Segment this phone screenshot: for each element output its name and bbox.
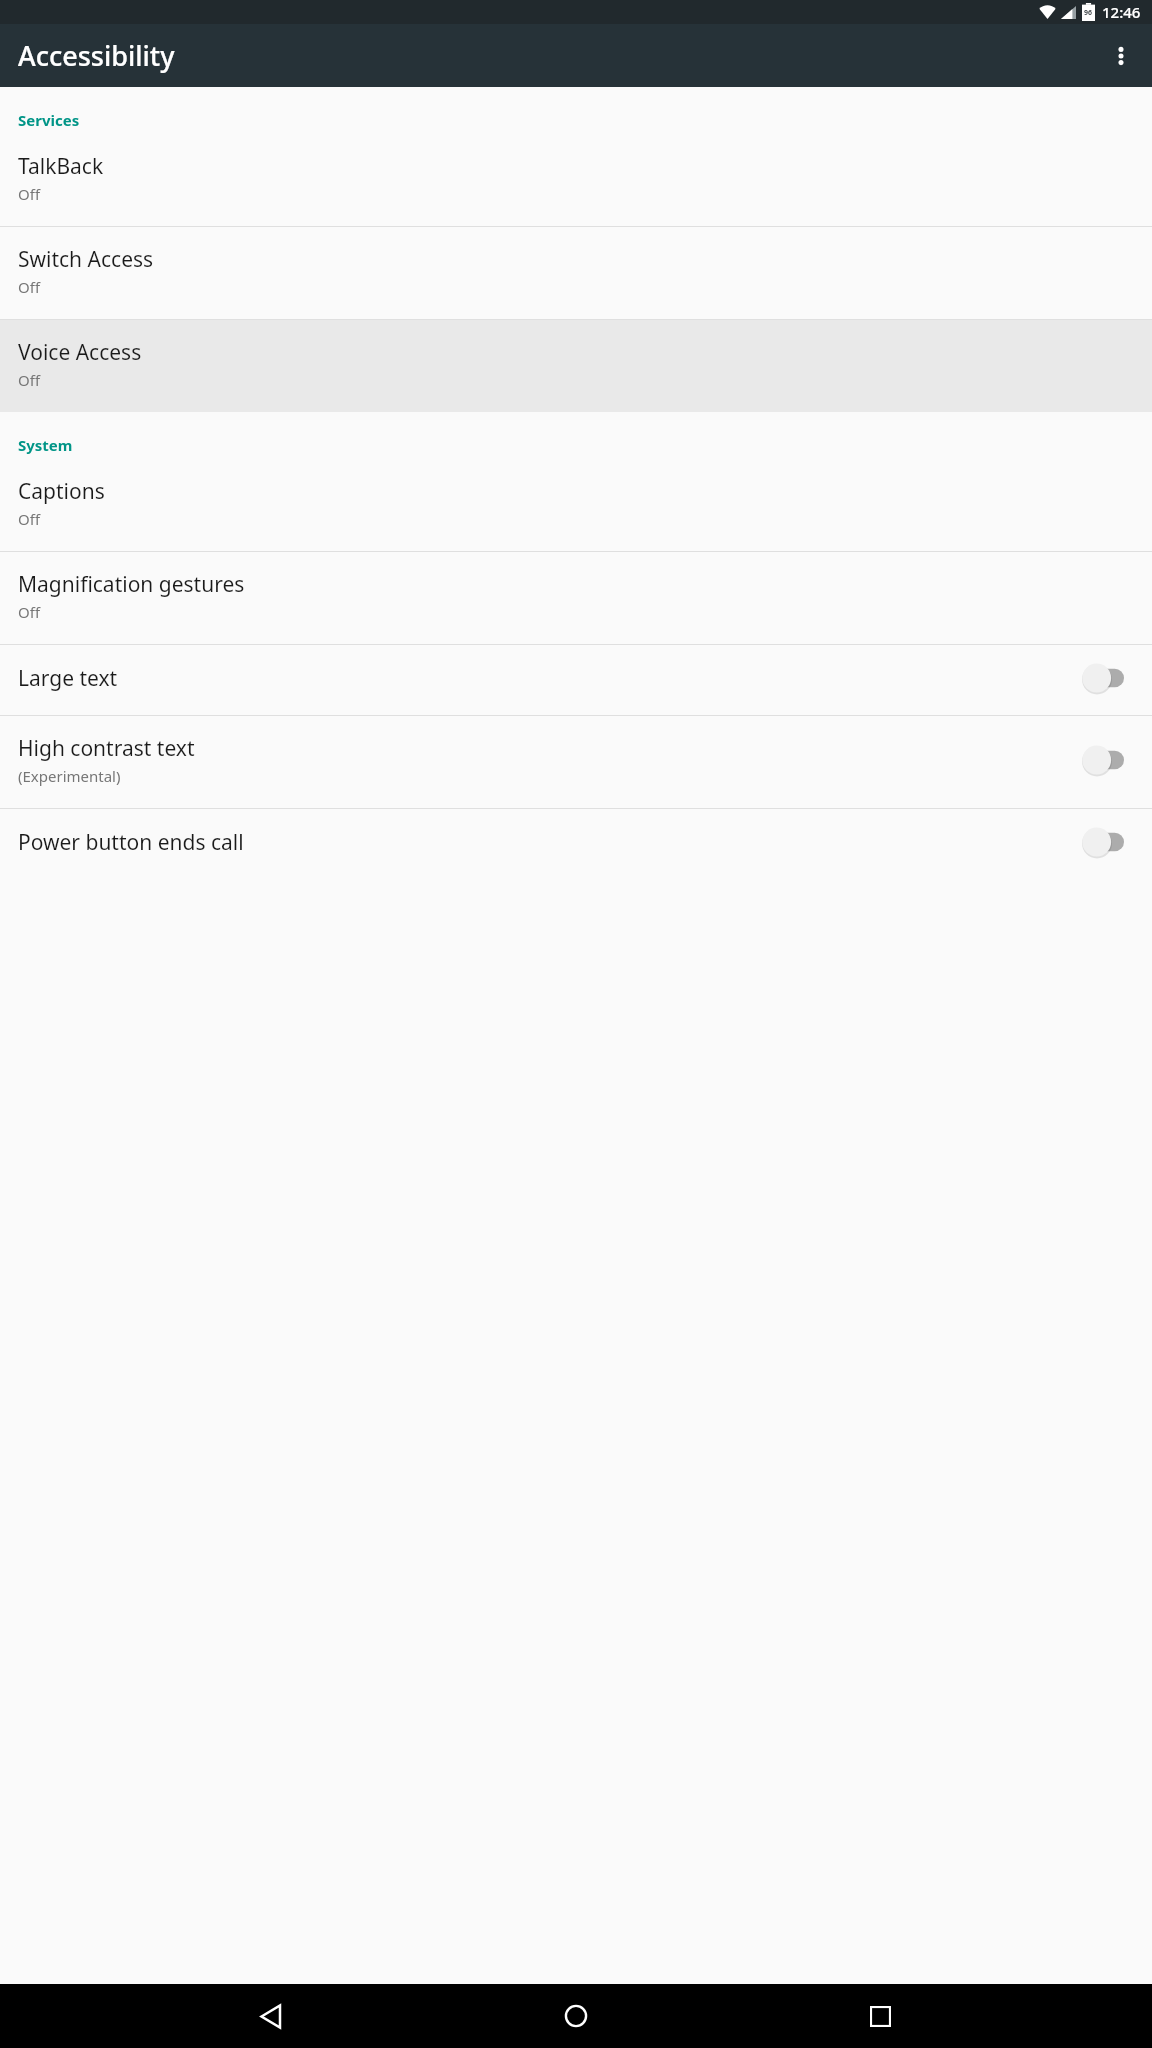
button[interactable]: Magnification gestures [0,552,1152,644]
staticText: Off [18,602,41,622]
button[interactable]: Power button ends call [0,809,1152,879]
staticText: Magnification gestures [18,570,245,599]
button[interactable]: Toggle off [1082,745,1132,775]
button[interactable]: Captions [0,459,1152,551]
staticText: High contrast text [18,734,195,763]
button[interactable]: Switch Access [0,227,1152,319]
staticText: Off [18,370,41,390]
button[interactable]: More options [1097,32,1145,80]
staticText: Off [18,277,41,297]
staticText: Voice Access [18,338,142,367]
staticText: Off [18,184,41,204]
button[interactable]: Back [240,1984,304,2048]
staticText: Off [18,509,41,529]
staticText: 12:46 [1102,2,1141,22]
staticText: Switch Access [18,245,154,274]
staticText: Accessibility [18,37,175,74]
button[interactable]: Toggle off [1082,663,1132,693]
button[interactable]: Voice Access [0,320,1152,412]
button[interactable]: Home [544,1984,608,2048]
staticText: (Experimental) [18,766,121,786]
staticText: TalkBack [18,152,104,181]
button[interactable]: Large text [0,645,1152,715]
button[interactable]: Toggle off [1082,827,1132,857]
button[interactable]: TalkBack [0,134,1152,226]
staticText: Large text [18,664,118,693]
staticText: Power button ends call [18,828,244,857]
button[interactable]: High contrast text [0,716,1152,808]
button[interactable]: Recent apps [848,1984,912,2048]
staticText: Services [18,110,80,130]
staticText: System [18,435,73,455]
staticText: 96 [1084,8,1093,18]
staticText: Captions [18,477,105,506]
